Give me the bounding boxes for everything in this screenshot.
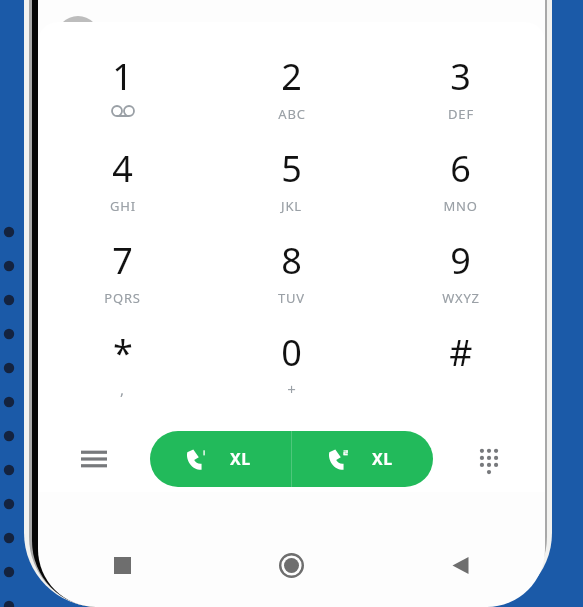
button[interactable]: 0 xyxy=(207,320,376,412)
staticText: 9 xyxy=(450,236,471,285)
staticText: JKL xyxy=(281,197,302,215)
staticText: MNO xyxy=(443,197,478,215)
staticText: WXYZ xyxy=(442,289,480,307)
button[interactable]: 7 xyxy=(38,228,207,320)
staticText: 5 xyxy=(281,144,302,193)
button[interactable]: Keypad xyxy=(433,430,545,488)
staticText: 8 xyxy=(281,236,302,285)
staticText: # xyxy=(449,328,473,377)
button[interactable]: XL xyxy=(150,431,291,487)
staticText: 2 xyxy=(281,52,302,101)
button[interactable]: * xyxy=(38,320,207,412)
button[interactable]: 1 xyxy=(38,44,207,136)
button[interactable]: Recent apps xyxy=(38,537,207,593)
staticText: XL xyxy=(372,448,393,470)
staticText: 7 xyxy=(112,236,133,285)
button[interactable]: # xyxy=(376,320,545,412)
button[interactable]: 4 xyxy=(38,136,207,228)
staticText: 0 xyxy=(281,328,302,377)
button[interactable]: Home xyxy=(207,537,376,593)
staticText: * xyxy=(113,328,133,377)
button[interactable]: XL xyxy=(292,431,433,487)
staticText: ABC xyxy=(278,105,306,123)
button[interactable]: Menu xyxy=(38,430,150,488)
button[interactable]: Danita xyxy=(38,0,545,62)
staticText: 6 xyxy=(450,144,471,193)
staticText: TUV xyxy=(278,289,305,307)
button[interactable]: 5 xyxy=(207,136,376,228)
staticText: DEF xyxy=(448,105,474,123)
staticText: XL xyxy=(230,448,251,470)
staticText: 3 xyxy=(450,52,471,101)
staticText: GHI xyxy=(110,197,136,215)
button[interactable]: 2 xyxy=(207,44,376,136)
button[interactable]: Back xyxy=(376,537,545,593)
staticText: 1 xyxy=(112,52,133,101)
button[interactable]: 3 xyxy=(376,44,545,136)
staticText: , xyxy=(120,379,125,399)
staticText: 4 xyxy=(112,144,133,193)
button[interactable]: 6 xyxy=(376,136,545,228)
staticText: + xyxy=(287,379,297,399)
staticText: PQRS xyxy=(104,289,141,307)
button[interactable]: 8 xyxy=(207,228,376,320)
button[interactable]: 9 xyxy=(376,228,545,320)
